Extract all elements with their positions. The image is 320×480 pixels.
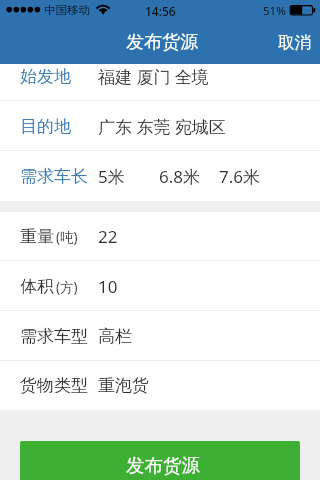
staticText: 广东 东莞 宛城区 — [98, 115, 226, 138]
staticText: 取消 — [278, 32, 311, 53]
button[interactable]: 体积 — [0, 261, 320, 311]
staticText: 货物类型 — [20, 375, 88, 396]
staticText: 高栏 — [98, 326, 132, 347]
staticText: 需求车型 — [20, 326, 88, 347]
staticText: 需求车长 — [20, 166, 88, 187]
button[interactable]: 货物类型 — [0, 361, 320, 410]
button[interactable]: 始发地 — [0, 51, 320, 101]
staticText: 重泡货 — [98, 375, 149, 396]
staticText: 发布货源 — [126, 454, 200, 477]
staticText: 10 — [98, 275, 118, 298]
button[interactable]: 重量 — [0, 212, 320, 261]
staticText: 目的地 — [20, 116, 71, 137]
staticText: (吨) — [56, 228, 78, 246]
staticText: 始发地 — [20, 66, 71, 87]
staticText: 14:56 — [145, 3, 176, 19]
button[interactable]: 目的地 — [0, 101, 320, 151]
staticText: 5米 — [98, 165, 125, 188]
staticText: 22 — [98, 225, 118, 248]
staticText: 中国移动 — [44, 3, 90, 17]
staticText: 重量 — [20, 226, 54, 247]
staticText: 体积 — [20, 276, 54, 297]
button[interactable]: 需求车长 — [0, 151, 320, 201]
staticText: (方) — [56, 278, 78, 296]
staticText: 6.8米 — [159, 165, 201, 188]
staticText: 发布货源 — [126, 31, 198, 54]
button[interactable]: 取消 — [264, 20, 320, 64]
button[interactable]: 发布货源 — [20, 441, 300, 480]
staticText: 51% — [263, 3, 286, 19]
button[interactable]: 需求车型 — [0, 311, 320, 361]
staticText: 7.6米 — [219, 165, 261, 188]
staticText: 福建 厦门 全境 — [98, 65, 209, 88]
